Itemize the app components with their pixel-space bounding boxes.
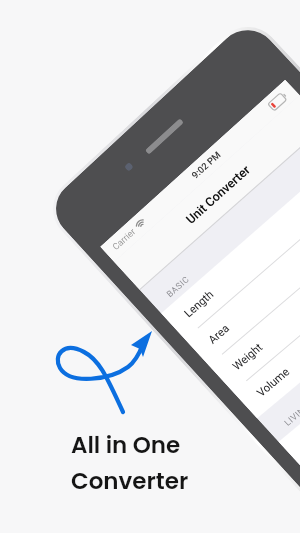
button[interactable]: Time xyxy=(279,281,300,468)
staticText: BASIC xyxy=(164,274,192,299)
button[interactable]: Volume xyxy=(234,230,300,418)
staticText: Volume xyxy=(254,365,293,400)
button[interactable]: Area xyxy=(185,176,300,365)
button[interactable]: Length xyxy=(161,149,300,339)
staticText: All in One xyxy=(71,429,181,461)
button[interactable]: Weight xyxy=(209,203,300,392)
staticText: Weight xyxy=(230,341,265,373)
staticText: Converter xyxy=(71,465,189,497)
staticText: Carrier xyxy=(111,226,138,253)
staticText: Unit Converter xyxy=(183,162,254,227)
staticText: LIVING xyxy=(282,401,300,428)
staticText: 9:02 PM xyxy=(190,149,224,181)
staticText: Length xyxy=(182,288,217,320)
staticText: Area xyxy=(206,322,232,347)
